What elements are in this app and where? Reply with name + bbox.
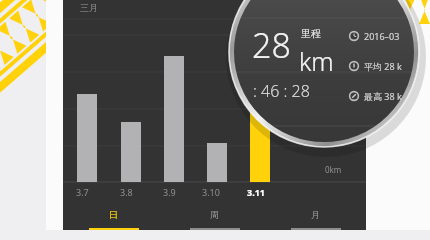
- other: Decorative tyre tread: [0, 0, 430, 240]
- staticText: 0km: [325, 164, 342, 175]
- staticText: 平均 28 k: [364, 60, 402, 72]
- staticText: 日: [109, 209, 118, 220]
- staticText: 里程: [301, 27, 321, 40]
- staticText: 三月: [80, 2, 98, 13]
- button[interactable]: 周: [164, 206, 265, 240]
- staticText: : 46 : 28: [253, 80, 310, 102]
- staticText: 28: [252, 22, 291, 68]
- staticText: 月: [311, 209, 320, 220]
- staticText: 周: [210, 209, 219, 220]
- button[interactable]: 日: [63, 206, 164, 240]
- staticText: 3.7: [76, 186, 89, 198]
- staticText: 3.10: [202, 186, 220, 198]
- staticText: 3.8: [120, 186, 133, 198]
- staticText: km: [299, 44, 334, 78]
- staticText: 最高 38 k: [364, 90, 402, 102]
- staticText: 3.9: [163, 186, 176, 198]
- button[interactable]: 月: [265, 206, 366, 240]
- staticText: 2016–03: [364, 30, 400, 42]
- staticText: 3.11: [247, 186, 265, 198]
